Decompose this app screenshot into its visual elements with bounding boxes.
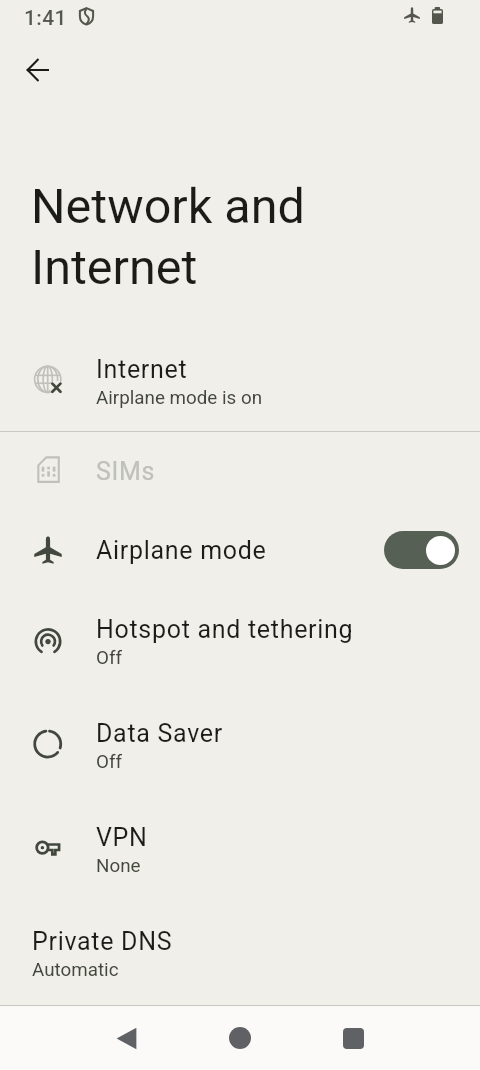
button[interactable]: Private DNS <box>0 913 480 991</box>
button[interactable]: Data Saver <box>0 705 480 783</box>
button[interactable]: Home <box>214 1012 266 1064</box>
staticText: Internet <box>96 355 188 384</box>
button[interactable]: SIMs <box>0 443 480 499</box>
button[interactable]: Navigate up <box>13 45 62 94</box>
staticText: Off <box>96 647 123 669</box>
button[interactable]: Hotspot and tethering <box>0 601 480 679</box>
button[interactable]: Airplane mode toggle <box>384 531 459 569</box>
staticText: SIMs <box>96 457 156 486</box>
button[interactable]: Internet <box>0 341 480 419</box>
button[interactable]: Back <box>100 1012 152 1064</box>
staticText: Data Saver <box>96 719 223 748</box>
button[interactable]: VPN <box>0 809 480 887</box>
button[interactable]: Recent apps <box>327 1012 379 1064</box>
staticText: Private DNS <box>32 927 173 956</box>
staticText: Airplane mode <box>96 536 267 565</box>
staticText: 1:41 <box>24 6 67 31</box>
button[interactable]: Airplane mode <box>0 522 480 578</box>
staticText: Airplane mode is on <box>96 387 263 409</box>
staticText: Automatic <box>32 959 119 981</box>
staticText: Off <box>96 751 123 773</box>
staticText: Network and Internet <box>31 178 371 296</box>
staticText: None <box>96 855 141 877</box>
staticText: Hotspot and tethering <box>96 615 354 644</box>
staticText: VPN <box>96 823 148 852</box>
